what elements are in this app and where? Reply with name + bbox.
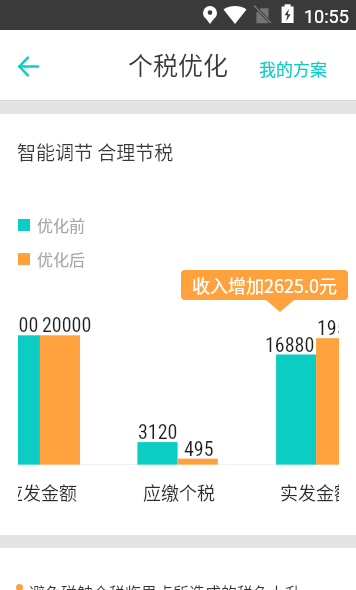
other: Battery charging (281, 4, 294, 24)
staticText: 个税优化 (128, 46, 229, 82)
other: Wi-Fi (223, 6, 247, 24)
staticText: 19505 (317, 316, 339, 339)
staticText: 16880 (265, 333, 315, 356)
staticText: 应缴个税 (143, 479, 215, 505)
staticText: 智能调节 合理节税 (17, 138, 174, 166)
staticText: 3120 (138, 420, 178, 443)
other: No SIM (253, 5, 272, 26)
staticText: 优化前 (37, 213, 86, 236)
staticText: 10:55 (304, 6, 349, 27)
staticText: 优化后 (37, 247, 86, 270)
staticText: 495 (184, 437, 214, 460)
staticText: 20000 (42, 313, 92, 336)
button[interactable]: Back (8, 46, 48, 86)
staticText: 应发金额 (18, 479, 77, 505)
button[interactable]: 我的方案 (255, 52, 331, 85)
staticText: 收入增加2625.0元 (192, 272, 337, 298)
staticText: 实发金额 (280, 479, 339, 505)
other: Location (203, 6, 217, 24)
staticText: 我的方案 (259, 56, 327, 81)
staticText: 20000 (18, 313, 39, 336)
staticText: 避免碰触个税临界点所造成的税负上升 (29, 580, 302, 590)
